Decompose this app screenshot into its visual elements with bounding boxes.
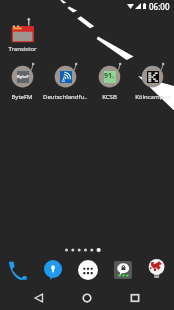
button[interactable]: Password manager (35, 255, 70, 285)
button[interactable]: Phone (0, 255, 35, 285)
button[interactable]: Deutschlandfu… (43, 62, 87, 101)
button[interactable]: Transistor (0, 14, 44, 53)
button[interactable]: All apps (70, 255, 105, 285)
staticText: KCSB (102, 93, 117, 101)
button[interactable]: Home (75, 286, 99, 310)
button[interactable]: Messages (105, 255, 140, 285)
staticText: 06:00 (149, 1, 170, 12)
staticText: 91.9 (104, 71, 116, 83)
staticText: Transistor (8, 45, 37, 53)
button[interactable]: Kölncampus (130, 62, 174, 101)
staticText: ByteFM (11, 93, 33, 101)
button[interactable]: Browser (140, 255, 174, 285)
button[interactable]: Back (27, 286, 51, 310)
button[interactable]: ByteFM (0, 62, 44, 101)
staticText: Deutschlandfu… (43, 93, 87, 101)
button[interactable]: 91.9 (87, 62, 131, 101)
staticText: ByteFM (17, 74, 29, 80)
staticText: Kölncampus (135, 93, 170, 101)
button[interactable]: Recents (123, 286, 147, 310)
